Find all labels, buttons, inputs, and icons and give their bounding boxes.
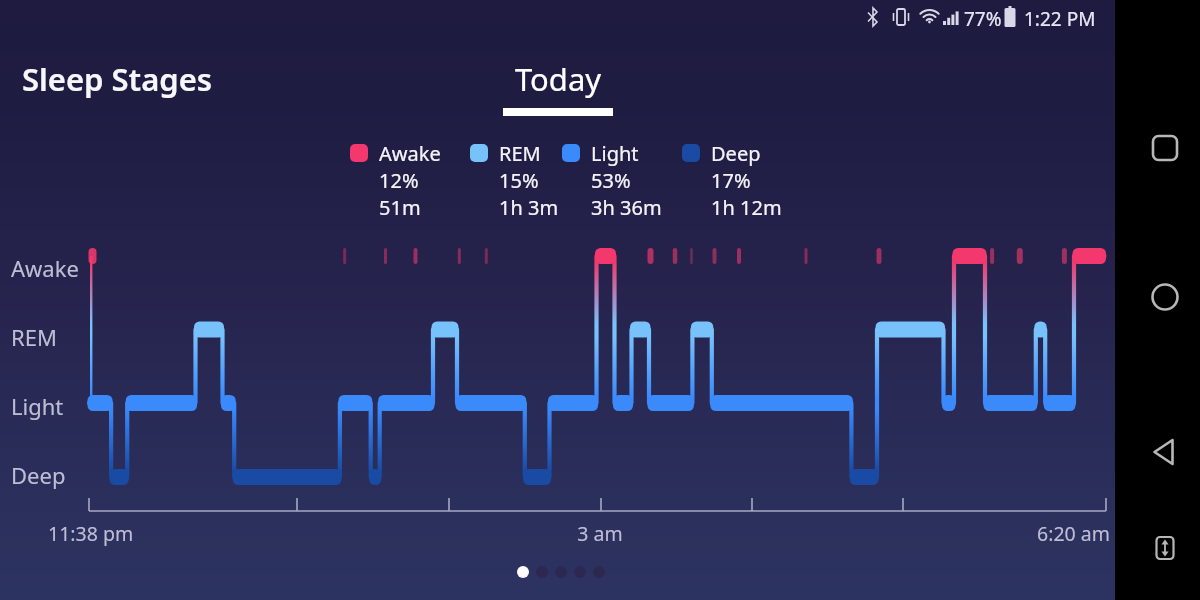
staticText: 17% bbox=[711, 167, 751, 194]
button[interactable]: REM bbox=[470, 142, 548, 223]
button[interactable]: Page 3 bbox=[551, 565, 570, 578]
button[interactable]: Page 4 bbox=[570, 565, 589, 578]
button[interactable]: Sleep Stages bbox=[22, 58, 213, 100]
staticText: 11:38 pm bbox=[48, 520, 134, 547]
staticText: 15% bbox=[499, 167, 539, 194]
button[interactable]: Deep bbox=[682, 142, 771, 223]
button[interactable]: Back bbox=[1143, 430, 1187, 474]
button[interactable]: Page 2 bbox=[532, 565, 551, 578]
staticText: Awake bbox=[11, 253, 79, 283]
staticText: Light bbox=[11, 391, 64, 421]
staticText: 3h 36m bbox=[591, 194, 662, 221]
button[interactable]: Page 1 bbox=[513, 565, 532, 578]
staticText: Light bbox=[591, 140, 639, 167]
staticText: REM bbox=[11, 322, 57, 352]
staticText: Deep bbox=[11, 460, 66, 490]
button[interactable]: Home bbox=[1143, 275, 1187, 319]
button[interactable]: Rotation lock bbox=[1143, 526, 1187, 570]
button[interactable]: Recent apps bbox=[1143, 126, 1187, 170]
staticText: 77% bbox=[964, 6, 1002, 32]
staticText: 12% bbox=[379, 167, 419, 194]
staticText: 51m bbox=[379, 194, 421, 221]
staticText: Sleep Stages bbox=[22, 58, 213, 100]
staticText: 1h 3m bbox=[499, 194, 559, 221]
staticText: 3 am bbox=[550, 520, 650, 547]
staticText: REM bbox=[499, 140, 541, 167]
staticText: 6:20 am bbox=[1000, 520, 1110, 547]
button[interactable]: Light bbox=[562, 142, 651, 223]
staticText: Awake bbox=[379, 140, 441, 167]
staticText: Deep bbox=[711, 140, 761, 167]
button[interactable]: Page 5 bbox=[589, 565, 608, 578]
staticText: Today bbox=[515, 58, 602, 100]
staticText: 1:22 PM bbox=[1024, 6, 1096, 32]
button[interactable]: Awake bbox=[350, 142, 430, 223]
staticText: 53% bbox=[591, 167, 631, 194]
staticText: 1h 12m bbox=[711, 194, 782, 221]
button[interactable]: Today bbox=[503, 58, 613, 108]
